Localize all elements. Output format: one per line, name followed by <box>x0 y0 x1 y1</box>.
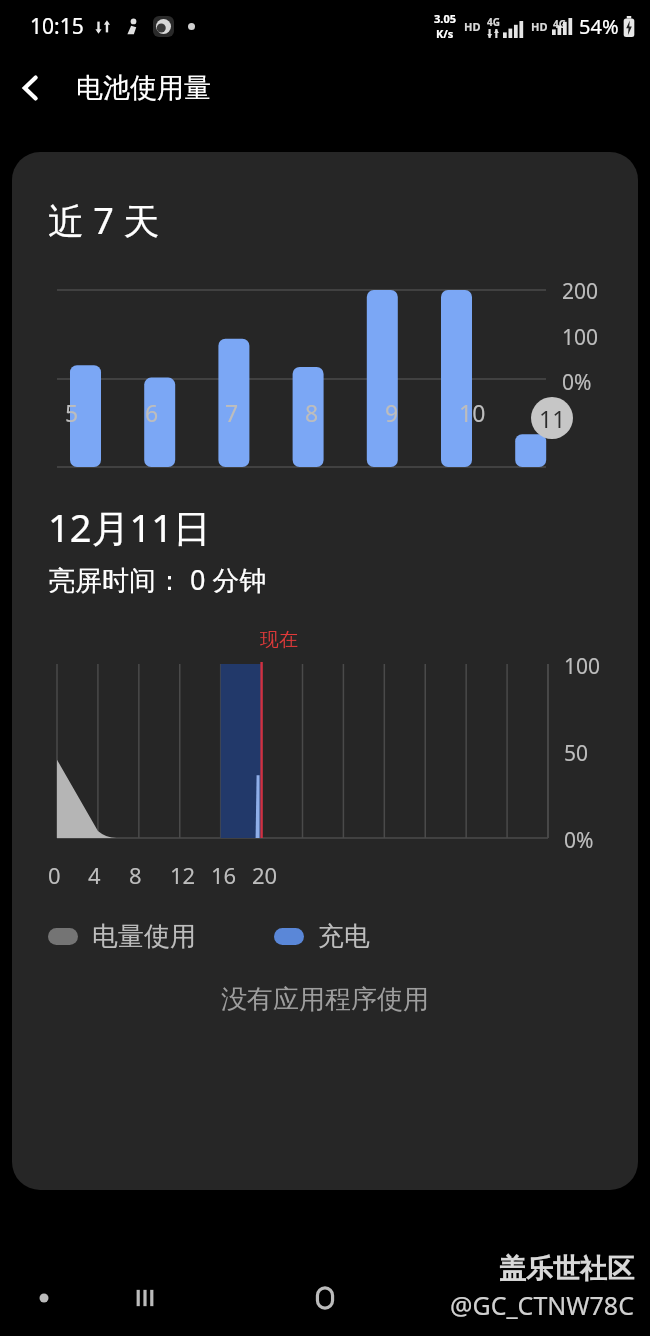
staticText: 54% <box>579 13 619 40</box>
staticText: 12月11日 <box>48 501 211 553</box>
staticText: 11 <box>539 403 566 434</box>
button[interactable]: Recents dot <box>36 1290 52 1306</box>
staticText: 现在 <box>260 628 298 652</box>
staticText: 8 <box>305 397 319 428</box>
staticText: 0% <box>562 368 622 397</box>
staticText: @GC_CTNW78C <box>450 1288 634 1322</box>
staticText: 100 <box>562 323 622 352</box>
staticText: 6 <box>145 397 159 428</box>
staticText: HD <box>531 19 548 34</box>
staticText: 近 7 天 <box>48 196 160 245</box>
staticText: 没有应用程序使用 <box>12 983 638 1016</box>
staticText: 5 <box>65 397 79 428</box>
staticText: 50 <box>564 739 624 768</box>
staticText: 0% <box>564 826 624 855</box>
staticText: 10 <box>459 397 486 428</box>
staticText: 4 <box>88 860 101 890</box>
staticText: 100 <box>564 652 624 681</box>
staticText: 4G <box>487 15 500 29</box>
staticText: 电量使用 <box>92 920 196 953</box>
staticText: 200 <box>562 277 622 306</box>
button[interactable]: Back <box>0 57 62 119</box>
button[interactable]: Recents <box>128 1281 162 1315</box>
button[interactable]: 充电 <box>274 920 370 953</box>
button[interactable]: 电量使用 <box>48 920 196 953</box>
button[interactable]: Home <box>307 1280 343 1316</box>
staticText: K/s <box>436 26 454 41</box>
staticText: 20 <box>252 860 278 890</box>
staticText: 4G <box>553 17 566 31</box>
staticText: 7 <box>225 397 239 428</box>
staticText: HD <box>464 19 481 34</box>
staticText: 0 <box>48 860 61 890</box>
staticText: 8 <box>129 860 142 890</box>
staticText: 亮屏时间： 0 分钟 <box>48 561 267 598</box>
staticText: 9 <box>385 397 399 428</box>
staticText: 10:15 <box>30 12 84 41</box>
staticText: 盖乐世社区 <box>499 1252 634 1286</box>
staticText: 电池使用量 <box>76 71 211 105</box>
staticText: 12 <box>170 860 196 890</box>
staticText: 16 <box>211 860 237 890</box>
staticText: 3.05 <box>434 11 456 26</box>
staticText: 充电 <box>318 920 370 953</box>
